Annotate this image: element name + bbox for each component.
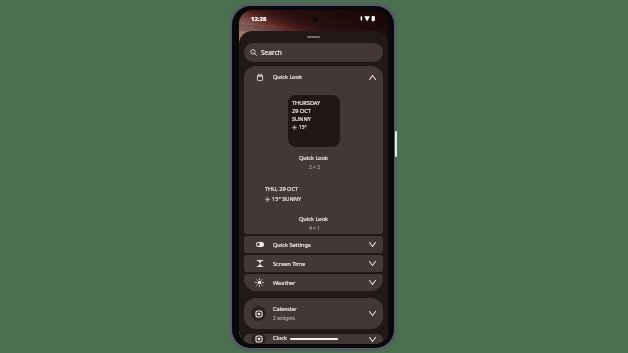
- button[interactable]: Search: [244, 43, 383, 62]
- staticText: Weather: [273, 279, 296, 287]
- staticText: THURSDAY: [292, 99, 321, 107]
- button[interactable]: Quick Look widgets: [244, 66, 383, 88]
- button[interactable]: Quick Settings: [244, 236, 383, 253]
- staticText: 4 × 1: [309, 225, 320, 232]
- button[interactable]: Weather: [244, 274, 383, 291]
- button[interactable]: Calendar: [244, 298, 383, 329]
- staticText: THU, 29 OCT: [265, 185, 299, 193]
- staticText: Calendar: [273, 305, 297, 313]
- other: Quick Settings: [256, 242, 264, 247]
- staticText: 2 widgets: [273, 315, 296, 322]
- staticText: SUNNY: [292, 115, 311, 123]
- staticText: Screen Time: [273, 260, 306, 268]
- button[interactable]: THURSDAY: [288, 95, 340, 147]
- other: Quick Look widgets: [257, 74, 263, 81]
- staticText: 15°: [299, 124, 307, 131]
- other: Screen Time: [257, 260, 263, 267]
- other: Weather: [255, 278, 264, 287]
- staticText: Search: [261, 48, 282, 57]
- staticText: 15° SUNNY: [272, 195, 302, 203]
- staticText: Quick Settings: [273, 241, 311, 249]
- staticText: Clock: [273, 334, 288, 342]
- staticText: Quick Look: [273, 73, 303, 81]
- staticText: 29 OCT: [292, 107, 311, 115]
- staticText: Quick Look: [299, 215, 329, 223]
- staticText: 2 × 2: [309, 164, 320, 171]
- button[interactable]: Clock: [244, 334, 383, 344]
- staticText: Quick Look: [299, 154, 329, 162]
- staticText: 12:28: [251, 15, 267, 23]
- button[interactable]: Screen Time: [244, 255, 383, 272]
